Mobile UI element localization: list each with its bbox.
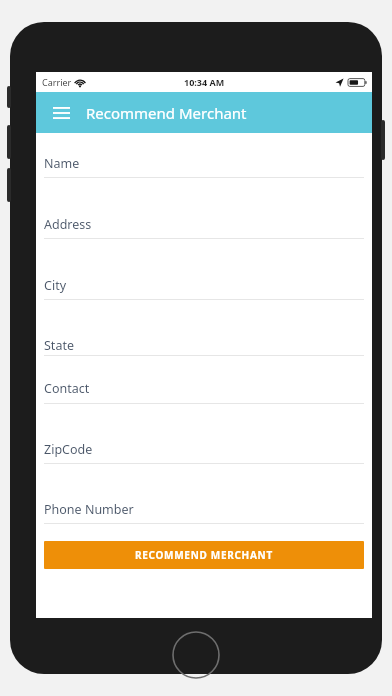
staticText: ZipCode	[44, 441, 93, 458]
staticText: Address	[44, 216, 92, 233]
button[interactable]: Contact	[36, 375, 372, 401]
staticText: Recommend Merchant	[86, 103, 247, 123]
staticText: Phone Number	[44, 501, 134, 518]
button[interactable]: RECOMMEND MERCHANT	[44, 541, 364, 569]
staticText: City	[44, 277, 67, 294]
button[interactable]: City	[36, 272, 372, 298]
button[interactable]: Address	[36, 211, 372, 237]
button[interactable]: Open navigation menu	[44, 96, 78, 130]
button[interactable]: State	[36, 332, 372, 358]
staticText: 10:34 AM	[184, 76, 225, 88]
staticText: RECOMMEND MERCHANT	[135, 548, 273, 562]
staticText: Contact	[44, 380, 90, 397]
button[interactable]: Name	[36, 150, 372, 176]
button[interactable]: Phone Number	[36, 496, 372, 522]
staticText: State	[44, 337, 74, 354]
staticText: Name	[44, 155, 80, 172]
staticText: Carrier	[42, 76, 72, 88]
button[interactable]: ZipCode	[36, 436, 372, 462]
